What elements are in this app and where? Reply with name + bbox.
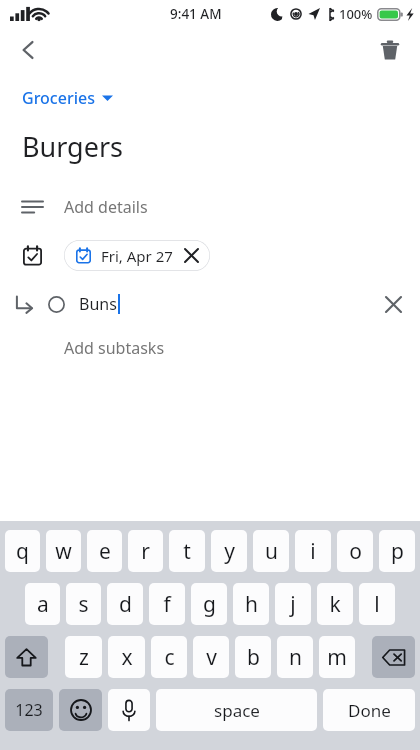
button[interactable]: s <box>66 583 101 625</box>
staticText: o <box>349 537 362 566</box>
staticText: h <box>245 590 258 619</box>
staticText: n <box>289 643 302 672</box>
button[interactable]: n <box>277 636 313 678</box>
button[interactable]: Back <box>7 29 49 71</box>
button[interactable]: w <box>46 530 81 572</box>
button[interactable]: e <box>87 530 122 572</box>
staticText: v <box>206 643 217 672</box>
staticText: t <box>183 537 191 566</box>
button[interactable]: a <box>25 583 60 625</box>
button[interactable]: t <box>169 530 205 572</box>
staticText: r <box>141 537 150 566</box>
button[interactable]: i <box>295 530 331 572</box>
button[interactable]: Fri, Apr 27 <box>64 240 210 271</box>
staticText: 100% <box>339 5 373 23</box>
staticText: e <box>99 537 111 566</box>
button[interactable]: h <box>233 583 269 625</box>
staticText: Add subtasks <box>64 337 165 359</box>
button[interactable]: 123 <box>5 689 53 731</box>
staticText: Add details <box>64 196 148 218</box>
staticText: i <box>310 537 316 566</box>
button[interactable]: space <box>156 689 317 731</box>
button[interactable]: Backspace <box>372 636 415 678</box>
button[interactable]: c <box>151 636 187 678</box>
staticText: 123 <box>15 699 43 721</box>
staticText: d <box>119 590 132 619</box>
button[interactable]: p <box>379 530 415 572</box>
staticText: Groceries <box>22 87 95 109</box>
button[interactable]: Groceries <box>17 84 118 112</box>
button[interactable]: y <box>211 530 247 572</box>
staticText: s <box>78 590 89 619</box>
button[interactable]: f <box>149 583 185 625</box>
staticText: w <box>55 537 72 566</box>
button[interactable]: Add details <box>0 189 420 225</box>
staticText: c <box>164 643 175 672</box>
staticText: x <box>121 643 133 672</box>
staticText: space <box>214 699 260 722</box>
button[interactable]: Add subtasks <box>0 331 420 365</box>
staticText: Burgers <box>22 128 124 165</box>
button[interactable]: u <box>253 530 289 572</box>
staticText: f <box>163 590 171 619</box>
button[interactable]: j <box>275 583 311 625</box>
button[interactable]: l <box>359 583 395 625</box>
button[interactable]: Shift <box>5 636 48 678</box>
button[interactable]: k <box>317 583 353 625</box>
staticText: b <box>247 643 260 672</box>
staticText: Done <box>348 699 391 722</box>
staticText: m <box>327 643 347 672</box>
staticText: u <box>265 537 278 566</box>
button[interactable]: Delete <box>369 29 411 71</box>
staticText: p <box>391 537 404 566</box>
staticText: g <box>203 590 216 619</box>
button[interactable]: Done <box>323 689 415 731</box>
button[interactable]: d <box>107 583 143 625</box>
button[interactable]: g <box>191 583 227 625</box>
staticText: y <box>224 537 235 566</box>
staticText: k <box>329 590 341 619</box>
staticText: q <box>16 537 29 566</box>
staticText: z <box>79 643 89 672</box>
staticText: a <box>37 590 49 619</box>
staticText: 9:41 AM <box>170 5 222 23</box>
button[interactable]: m <box>319 636 355 678</box>
button[interactable]: x <box>108 636 145 678</box>
button[interactable]: r <box>128 530 163 572</box>
button[interactable]: Remove subtask <box>372 285 414 323</box>
staticText: l <box>374 590 380 619</box>
button[interactable]: z <box>65 636 102 678</box>
staticText: Fri, Apr 27 <box>101 246 173 266</box>
button[interactable]: Emoji <box>59 689 102 731</box>
staticText: j <box>290 590 296 619</box>
staticText: Buns <box>79 293 117 315</box>
button[interactable]: q <box>5 530 40 572</box>
button[interactable]: b <box>235 636 271 678</box>
button[interactable]: o <box>337 530 373 572</box>
button[interactable]: Voice input <box>108 689 150 731</box>
button[interactable]: v <box>193 636 229 678</box>
